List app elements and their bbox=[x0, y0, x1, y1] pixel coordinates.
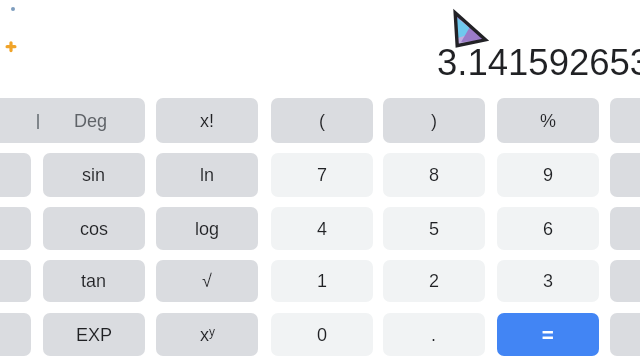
button[interactable]: Deg bbox=[0, 98, 145, 143]
button[interactable]: 1 bbox=[271, 260, 373, 302]
button[interactable]: EXP bbox=[43, 313, 145, 356]
staticText: 1 bbox=[317, 271, 328, 291]
button[interactable]: ln bbox=[156, 153, 258, 197]
button[interactable]: ( bbox=[271, 98, 373, 143]
button[interactable]: xy bbox=[156, 313, 258, 356]
staticText: = bbox=[542, 324, 554, 346]
button[interactable]: 6 bbox=[497, 207, 599, 250]
button[interactable]: tan bbox=[43, 260, 145, 302]
staticText: 9 bbox=[543, 165, 554, 185]
staticText: ) bbox=[431, 111, 437, 131]
staticText: Deg bbox=[74, 111, 108, 131]
staticText: EXP bbox=[76, 325, 113, 345]
button[interactable]: x! bbox=[156, 98, 258, 143]
button[interactable] bbox=[0, 153, 31, 197]
button[interactable] bbox=[0, 313, 31, 356]
button[interactable]: 2 bbox=[383, 260, 485, 302]
staticText: 8 bbox=[429, 165, 440, 185]
staticText: 0 bbox=[317, 325, 328, 345]
staticText: . bbox=[431, 325, 437, 345]
button[interactable]: 3 bbox=[497, 260, 599, 302]
staticText: 2 bbox=[429, 271, 440, 291]
button[interactable]: 4 bbox=[271, 207, 373, 250]
staticText: ( bbox=[319, 111, 325, 131]
button[interactable]: ) bbox=[383, 98, 485, 143]
staticText: 4 bbox=[317, 219, 328, 239]
button[interactable]: 8 bbox=[383, 153, 485, 197]
staticText: √ bbox=[202, 271, 212, 291]
button[interactable]: % bbox=[497, 98, 599, 143]
button[interactable] bbox=[610, 207, 640, 250]
button[interactable] bbox=[610, 313, 640, 356]
staticText: % bbox=[540, 111, 557, 131]
button[interactable]: = bbox=[497, 313, 599, 356]
button[interactable]: cos bbox=[43, 207, 145, 250]
staticText: 6 bbox=[543, 219, 554, 239]
staticText: 5 bbox=[429, 219, 440, 239]
button[interactable]: 7 bbox=[271, 153, 373, 197]
button[interactable] bbox=[610, 98, 640, 143]
staticText: ln bbox=[200, 165, 215, 185]
staticText: 3.14159265359 bbox=[437, 42, 640, 83]
button[interactable]: 0 bbox=[271, 313, 373, 356]
button[interactable]: 9 bbox=[497, 153, 599, 197]
button[interactable] bbox=[610, 260, 640, 302]
button[interactable] bbox=[0, 260, 31, 302]
staticText: tan bbox=[81, 271, 107, 291]
staticText: sin bbox=[82, 165, 106, 185]
staticText: log bbox=[195, 219, 220, 239]
button[interactable]: log bbox=[156, 207, 258, 250]
button[interactable] bbox=[610, 153, 640, 197]
button[interactable]: sin bbox=[43, 153, 145, 197]
button[interactable]: 5 bbox=[383, 207, 485, 250]
staticText: x! bbox=[200, 111, 215, 131]
staticText: 7 bbox=[317, 165, 328, 185]
staticText: 3 bbox=[543, 271, 554, 291]
staticText: cos bbox=[80, 219, 109, 239]
button[interactable]: √ bbox=[156, 260, 258, 302]
staticText: xy bbox=[200, 325, 215, 345]
button[interactable]: . bbox=[383, 313, 485, 356]
button[interactable] bbox=[0, 207, 31, 250]
